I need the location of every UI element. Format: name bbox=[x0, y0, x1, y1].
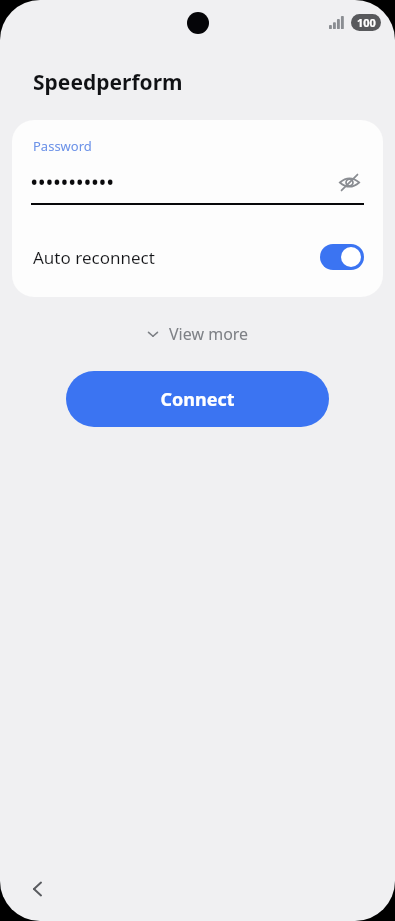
staticText: Connect bbox=[160, 387, 235, 412]
button[interactable]: Back bbox=[18, 869, 58, 909]
staticText: View more bbox=[169, 323, 249, 345]
button[interactable]: Connect bbox=[66, 371, 329, 427]
button[interactable]: Hide password bbox=[334, 167, 364, 197]
staticText: ••••••••••• bbox=[31, 171, 115, 194]
staticText: Auto reconnect bbox=[33, 246, 155, 269]
button[interactable]: Auto reconnect toggle bbox=[320, 244, 364, 270]
staticText: Speedperform bbox=[33, 68, 183, 97]
staticText: 100 bbox=[357, 15, 376, 30]
button[interactable]: Auto reconnect bbox=[12, 235, 383, 279]
button[interactable]: View more bbox=[136, 317, 259, 351]
staticText: Password bbox=[33, 137, 92, 155]
